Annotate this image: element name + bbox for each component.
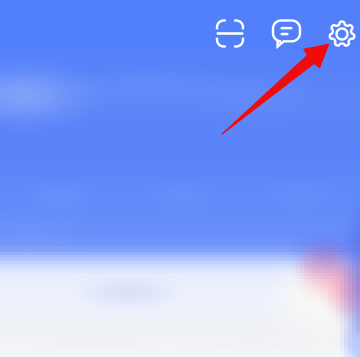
button[interactable]: Scan (208, 11, 252, 55)
button[interactable]: Messages (264, 11, 308, 55)
button[interactable]: Settings (320, 12, 360, 56)
